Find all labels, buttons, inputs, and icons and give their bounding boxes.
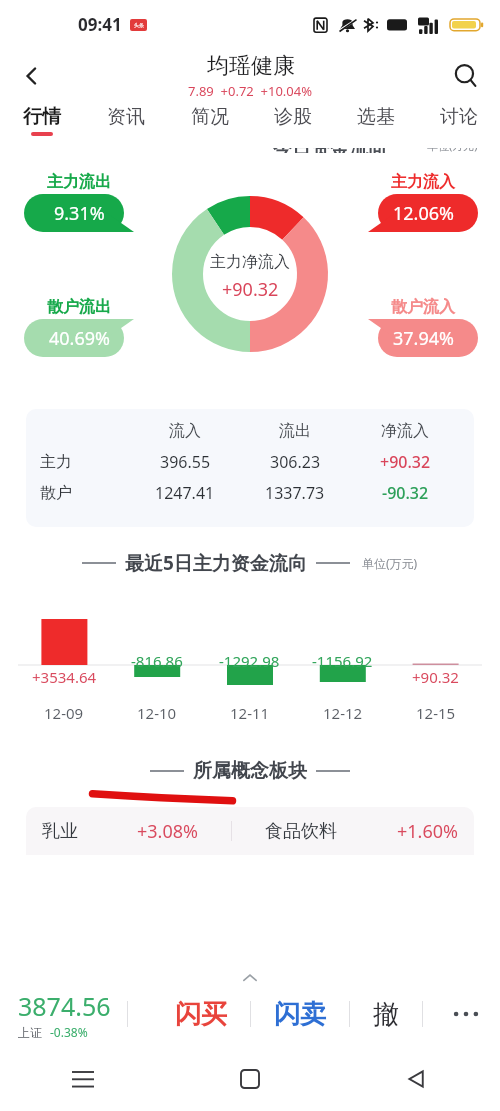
button[interactable]: 简况 — [168, 104, 251, 148]
staticText: +3.08% — [137, 819, 198, 844]
staticText: -90.32 — [382, 482, 429, 504]
button[interactable]: 12.06% — [368, 194, 478, 232]
staticText: 所属概念板块 — [193, 759, 307, 783]
button[interactable]: 流入 — [26, 409, 474, 527]
staticText: 396.55 — [160, 451, 211, 473]
staticText: -1156.92 — [312, 651, 373, 671]
staticText: 12-11 — [230, 703, 270, 723]
staticText: +90.32 — [222, 277, 279, 302]
staticText: 主力流出 — [47, 172, 111, 192]
staticText: 散户 — [40, 483, 72, 503]
button[interactable]: Back — [333, 1047, 500, 1111]
staticText: 行情 — [23, 105, 61, 129]
staticText: 主力 — [40, 452, 72, 472]
staticText: 单位(万元) — [427, 148, 478, 153]
button[interactable]: 诊股 — [251, 104, 334, 148]
button[interactable]: 闪卖 — [274, 998, 326, 1031]
staticText: 1247.41 — [155, 482, 215, 504]
staticText: 散户流入 — [391, 297, 455, 317]
button[interactable]: 40.69% — [24, 319, 134, 357]
button[interactable]: 讨论 — [417, 104, 500, 148]
staticText: 乳业 — [42, 820, 78, 843]
staticText: -1292.98 — [219, 651, 280, 671]
button[interactable]: 9.31% — [24, 194, 134, 232]
button[interactable]: 37.94% — [368, 319, 478, 357]
staticText: 均瑶健康 — [207, 52, 295, 80]
staticText: 流出 — [279, 421, 311, 441]
staticText: 净流入 — [381, 421, 429, 441]
staticText: 上证 — [18, 1025, 42, 1040]
staticText: 今日资金流向 — [273, 148, 387, 153]
button[interactable]: 乳业 — [26, 807, 474, 855]
staticText: 单位(万元) — [362, 555, 418, 571]
staticText: 40.69% — [49, 326, 110, 351]
staticText: 12-10 — [137, 703, 177, 723]
staticText: 37.94% — [393, 326, 454, 351]
staticText: 闪卖 — [274, 998, 326, 1031]
button[interactable]: 3874.56 — [18, 989, 111, 1040]
staticText: 诊股 — [274, 105, 312, 129]
staticText: 12-09 — [44, 703, 84, 723]
staticText: 12-15 — [416, 703, 456, 723]
staticText: 09:41 — [78, 13, 122, 36]
staticText: +90.32 — [380, 451, 431, 473]
staticText: 选基 — [357, 105, 395, 129]
button[interactable]: Recents — [0, 1047, 166, 1111]
staticText: 主力净流入 — [210, 252, 290, 272]
staticText: 12.06% — [393, 201, 454, 226]
staticText: 散户流出 — [47, 297, 111, 317]
staticText: 简况 — [191, 105, 229, 129]
staticText: 主力流入 — [391, 172, 455, 192]
staticText: 头条 — [134, 22, 144, 28]
staticText: 3874.56 — [18, 989, 111, 1023]
staticText: 资讯 — [107, 105, 145, 129]
staticText: +1.60% — [397, 819, 458, 844]
button[interactable]: 撤 — [373, 998, 399, 1031]
button[interactable]: Search — [442, 52, 490, 100]
button[interactable]: Back — [8, 52, 56, 100]
button[interactable]: 均瑶健康 — [188, 52, 313, 100]
staticText: 闪买 — [175, 998, 227, 1031]
staticText: +3534.64 — [32, 667, 97, 687]
staticText: 306.23 — [270, 451, 321, 473]
button[interactable]: More — [446, 994, 486, 1034]
staticText: 讨论 — [440, 105, 478, 129]
button[interactable]: 闪买 — [175, 998, 227, 1031]
button[interactable]: 资讯 — [84, 104, 168, 148]
staticText: 12-12 — [323, 703, 363, 723]
button[interactable]: 行情 — [0, 104, 84, 148]
staticText: -0.38% — [50, 1024, 88, 1040]
staticText: 流入 — [169, 421, 201, 441]
staticText: 7.89 +0.72 +10.04% — [188, 82, 313, 100]
staticText: 9.31% — [54, 201, 105, 226]
staticText: -816.86 — [131, 651, 183, 671]
button[interactable]: Home — [166, 1047, 333, 1111]
button[interactable]: 选基 — [334, 104, 417, 148]
staticText: +90.32 — [412, 667, 459, 687]
staticText: 1337.73 — [265, 482, 325, 504]
staticText: 撤 — [373, 998, 399, 1031]
staticText: 食品饮料 — [265, 820, 337, 843]
staticText: 最近5日主力资金流向 — [125, 550, 307, 576]
